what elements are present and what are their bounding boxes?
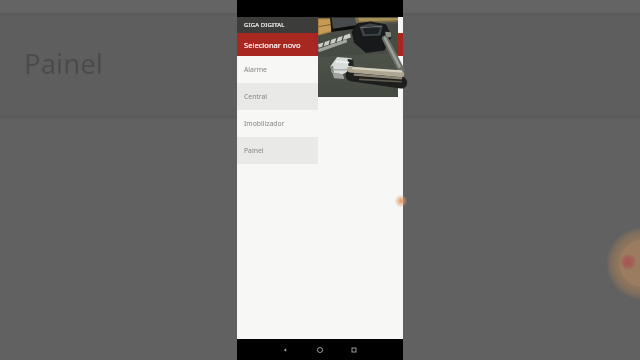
button[interactable]: Imobilizador (237, 110, 318, 137)
button[interactable]: Painel (237, 137, 318, 164)
button[interactable]: Selecionar novo (237, 33, 318, 56)
staticText: Selecionar novo (244, 40, 301, 50)
staticText: Alarme (244, 65, 267, 74)
button[interactable]: Central (237, 83, 318, 110)
staticText: Painel (244, 146, 264, 155)
button[interactable]: Back (271, 339, 299, 360)
staticText: Central (244, 92, 268, 101)
staticText: Imobilizador (244, 119, 285, 128)
button[interactable]: Recent apps (340, 339, 368, 360)
button[interactable]: Home (306, 339, 334, 360)
staticText: Painel (24, 45, 103, 82)
button[interactable]: GIGA DIGITAL (237, 17, 318, 33)
button[interactable]: Alarme (237, 56, 318, 83)
staticText: GIGA DIGITAL (244, 21, 285, 29)
